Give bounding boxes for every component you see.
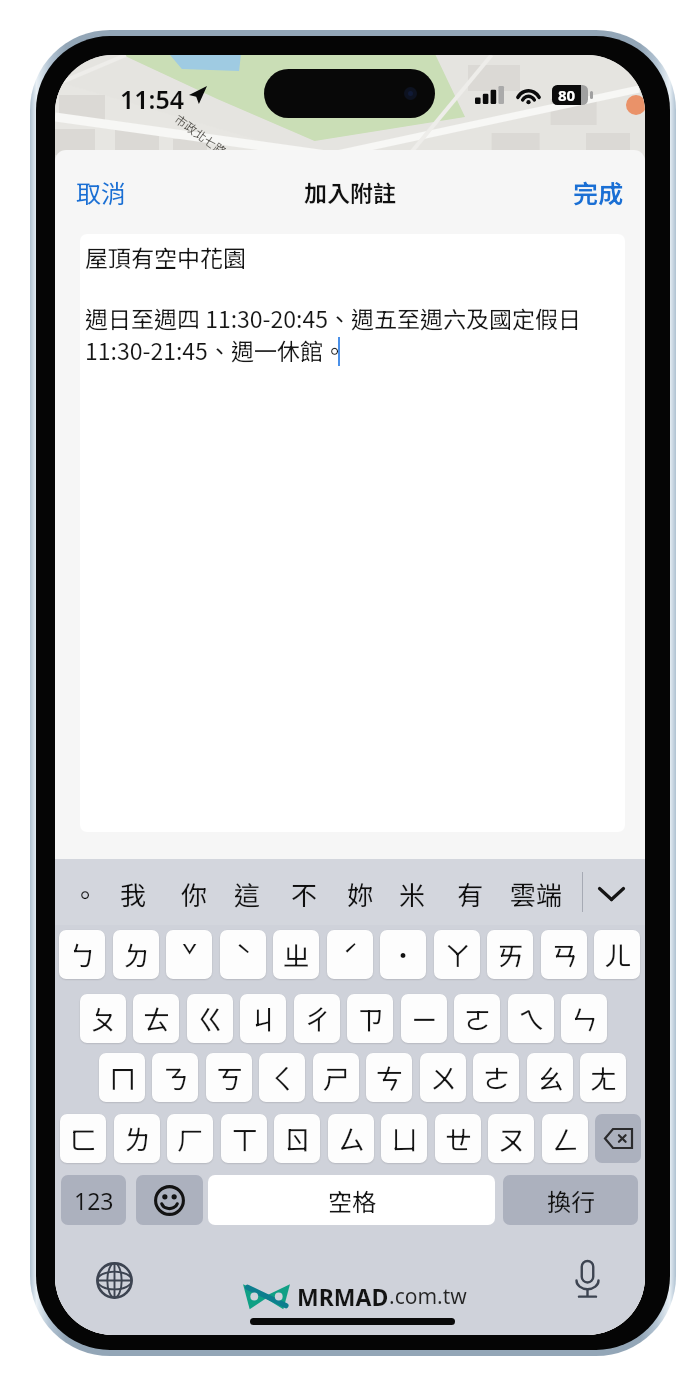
button[interactable]: Change keyboard xyxy=(91,1257,137,1303)
button[interactable]: ˊ xyxy=(327,930,373,979)
staticText: ㄡ xyxy=(498,1119,525,1158)
button[interactable]: ㄙ xyxy=(328,1114,374,1163)
button[interactable]: ㄡ xyxy=(488,1114,534,1163)
button[interactable]: ㄊ xyxy=(133,994,179,1043)
staticText: 加入附註 xyxy=(304,175,396,208)
button[interactable]: ㄣ xyxy=(561,994,607,1043)
staticText: 你 xyxy=(181,875,208,913)
staticText: 取消 xyxy=(76,174,127,210)
button[interactable]: Backspace xyxy=(595,1114,641,1163)
button[interactable]: ˋ xyxy=(220,930,266,979)
button[interactable]: ㄅ xyxy=(59,930,105,979)
button[interactable]: 123 xyxy=(61,1175,126,1225)
button[interactable]: ㄛ xyxy=(454,994,500,1043)
button[interactable]: 我 xyxy=(110,868,156,920)
staticText: ㄔ xyxy=(304,999,331,1038)
staticText: ㄋ xyxy=(162,1058,189,1097)
staticText: 11:54 xyxy=(120,82,185,116)
staticText: 我 xyxy=(120,875,147,913)
staticText: ㄠ xyxy=(537,1058,564,1097)
button[interactable]: ㄞ xyxy=(487,930,533,979)
staticText: ㄜ xyxy=(483,1058,510,1097)
staticText: ㄏ xyxy=(177,1119,204,1158)
button[interactable]: 雲端 xyxy=(503,868,569,920)
button[interactable]: ㄤ xyxy=(580,1053,626,1102)
button[interactable]: ㄒ xyxy=(221,1114,267,1163)
button[interactable]: 換行 xyxy=(503,1175,638,1225)
staticText: ㄌ xyxy=(124,1119,151,1158)
button[interactable]: 。 xyxy=(62,868,108,920)
staticText: ㄛ xyxy=(464,999,491,1038)
staticText: 完成 xyxy=(573,174,624,210)
button[interactable]: ㄈ xyxy=(60,1114,106,1163)
button[interactable]: 這 xyxy=(224,868,270,920)
staticText: ㄗ xyxy=(357,999,384,1038)
button[interactable]: ㄝ xyxy=(435,1114,481,1163)
staticText: 80 xyxy=(558,85,576,105)
staticText: 空格 xyxy=(328,1183,376,1218)
button[interactable]: ㄜ xyxy=(473,1053,519,1102)
staticText: ㄙ xyxy=(338,1119,365,1158)
button[interactable]: ㄩ xyxy=(381,1114,427,1163)
button[interactable]: ㄑ xyxy=(259,1053,305,1102)
button[interactable]: ㄋ xyxy=(152,1053,198,1102)
button[interactable]: 有 xyxy=(447,868,493,920)
button[interactable]: ㄗ xyxy=(347,994,393,1043)
staticText: ㄧ xyxy=(411,999,438,1038)
button[interactable]: ˇ xyxy=(166,930,212,979)
staticText: 雲端 xyxy=(510,875,563,913)
staticText: 換行 xyxy=(547,1183,595,1218)
button[interactable]: 完成 xyxy=(560,164,637,220)
button[interactable]: ㄔ xyxy=(294,994,340,1043)
button[interactable]: 屋頂有空中花園 xyxy=(80,234,625,832)
button[interactable]: ㄖ xyxy=(274,1114,320,1163)
button[interactable]: ㄚ xyxy=(434,930,480,979)
button[interactable]: ㄉ xyxy=(113,930,159,979)
button[interactable]: 空格 xyxy=(208,1175,495,1225)
button[interactable]: ㄏ xyxy=(167,1114,213,1163)
button[interactable]: ㄐ xyxy=(240,994,286,1043)
staticText: ㄦ xyxy=(604,935,631,974)
staticText: ㄎ xyxy=(216,1058,243,1097)
staticText: ㄐ xyxy=(250,999,277,1038)
staticText: ㄟ xyxy=(518,999,545,1038)
button[interactable]: ㄧ xyxy=(401,994,447,1043)
button[interactable]: ㄕ xyxy=(313,1053,359,1102)
staticText: ㄅ xyxy=(69,935,96,974)
button[interactable]: 米 xyxy=(389,868,435,920)
staticText: ˙ xyxy=(396,935,410,974)
button[interactable]: ㄆ xyxy=(80,994,126,1043)
staticText: ˊ xyxy=(342,935,359,974)
button[interactable]: ㄦ xyxy=(594,930,640,979)
button[interactable]: Emoji xyxy=(136,1175,203,1225)
button[interactable]: ㄎ xyxy=(206,1053,252,1102)
button[interactable]: Hide candidates xyxy=(587,868,635,920)
button[interactable]: 你 xyxy=(171,868,217,920)
button[interactable]: ㄓ xyxy=(273,930,319,979)
button[interactable]: ㄍ xyxy=(187,994,233,1043)
button[interactable]: Dictation xyxy=(564,1256,610,1302)
button[interactable]: 妳 xyxy=(337,868,383,920)
staticText: MRMAD xyxy=(297,1281,389,1312)
button[interactable]: ㄟ xyxy=(508,994,554,1043)
button[interactable]: ㄢ xyxy=(541,930,587,979)
staticText: ㄤ xyxy=(590,1058,617,1097)
staticText: 有 xyxy=(457,875,484,913)
button[interactable]: ㄇ xyxy=(99,1053,145,1102)
staticText: ㄖ xyxy=(284,1119,311,1158)
button[interactable]: ㄘ xyxy=(366,1053,412,1102)
staticText: ㄥ xyxy=(552,1119,579,1158)
staticText: ㄣ xyxy=(571,999,598,1038)
staticText: 不 xyxy=(291,875,318,913)
button[interactable]: ㄠ xyxy=(527,1053,573,1102)
button[interactable]: ˙ xyxy=(380,930,426,979)
button[interactable]: ㄌ xyxy=(114,1114,160,1163)
staticText: ㄇ xyxy=(109,1058,136,1097)
button[interactable]: ㄨ xyxy=(420,1053,466,1102)
button[interactable]: 取消 xyxy=(63,164,140,220)
staticText: ㄢ xyxy=(551,935,578,974)
button[interactable]: 不 xyxy=(281,868,327,920)
staticText: 週日至週四 11:30-20:45、週五至週六及國定假日 11:30-21:45… xyxy=(85,301,582,366)
button[interactable]: ㄥ xyxy=(542,1114,588,1163)
staticText: ㄩ xyxy=(391,1119,418,1158)
